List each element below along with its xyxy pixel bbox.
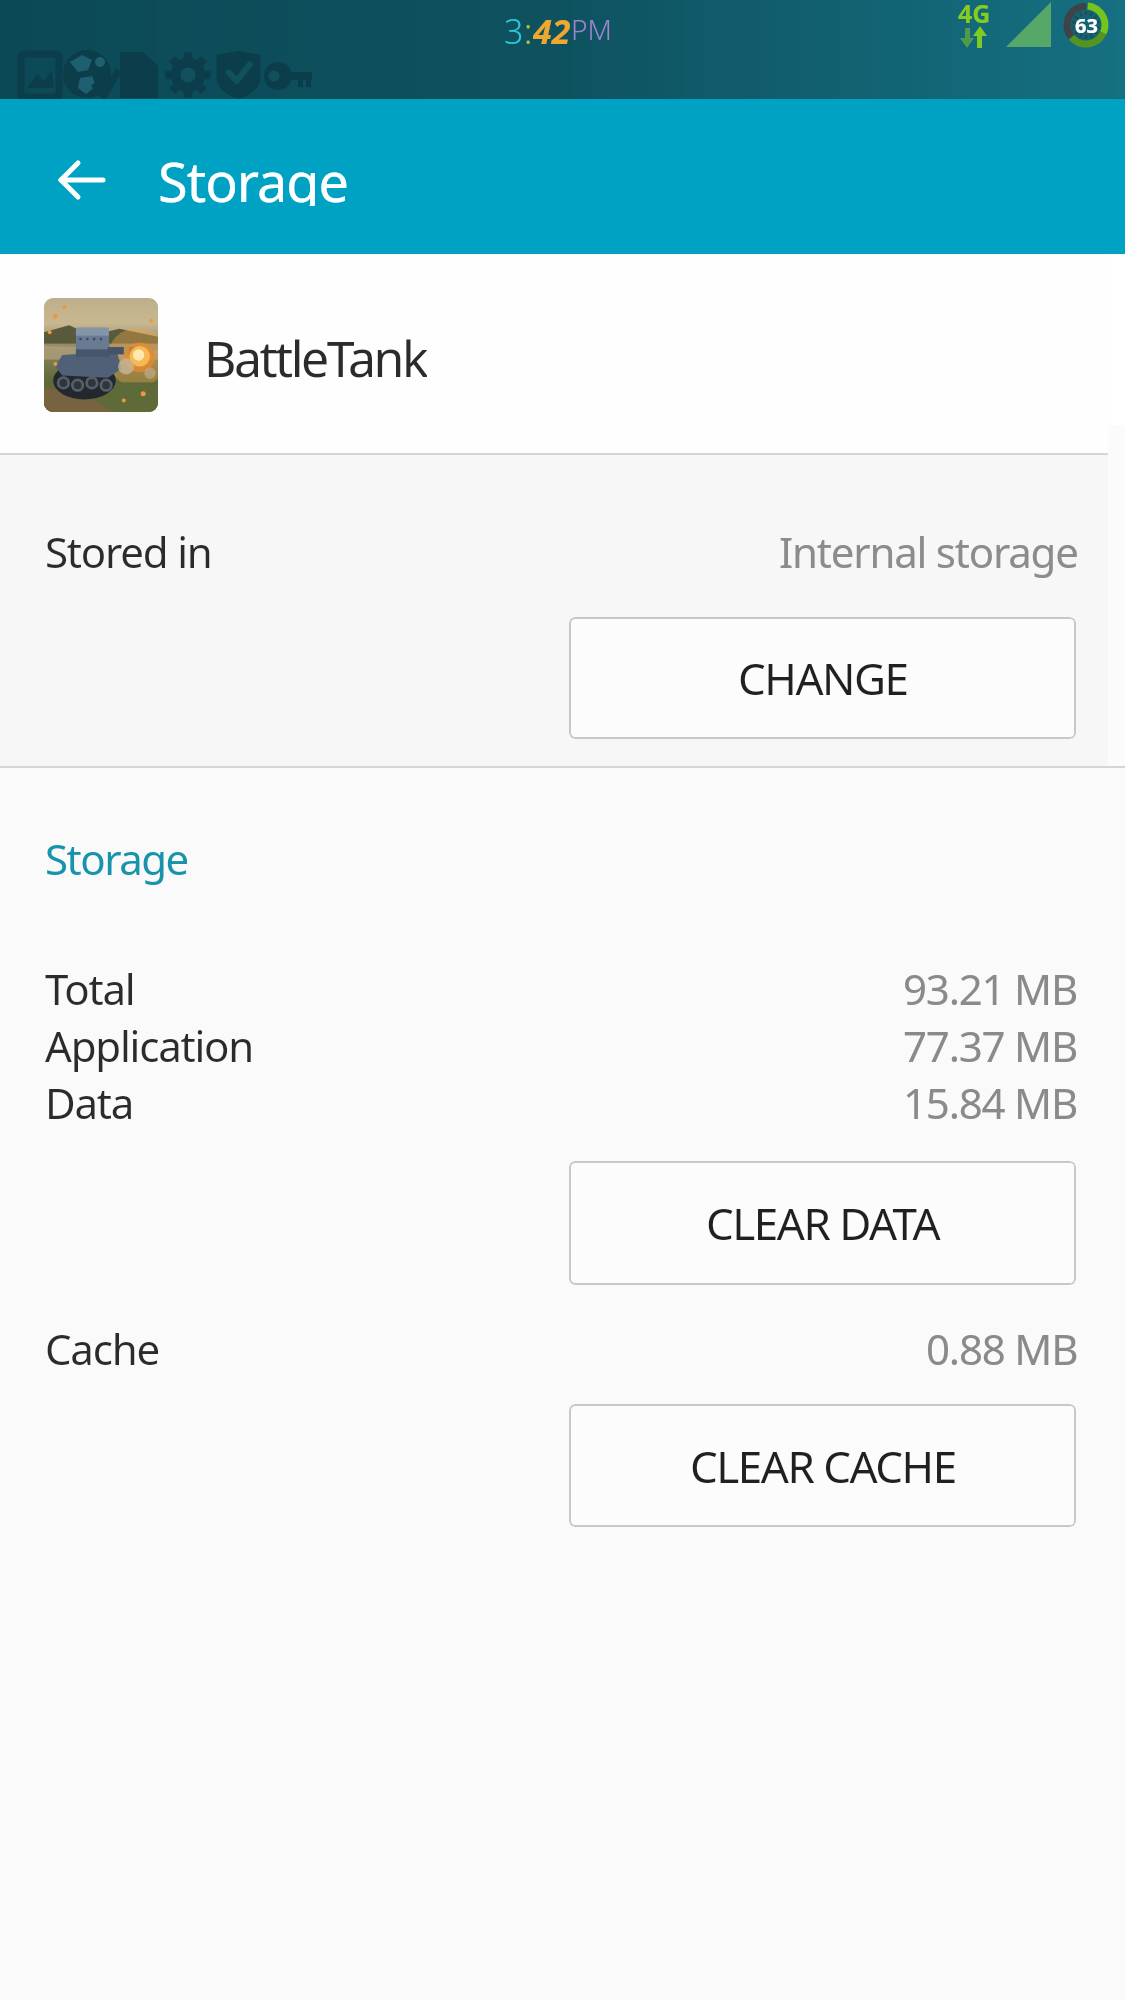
staticText: BattleTank (204, 324, 427, 386)
staticText: : (524, 8, 533, 48)
button[interactable]: CLEAR CACHE (569, 1404, 1076, 1527)
button[interactable] (38, 141, 124, 219)
button[interactable]: CLEAR DATA (569, 1161, 1076, 1285)
button[interactable]: CHANGE (569, 617, 1076, 739)
button[interactable]: Stored in (45, 521, 1078, 581)
staticText: Stored in (45, 523, 212, 580)
staticText: Storage (158, 144, 348, 206)
staticText: 63 (1075, 12, 1098, 39)
staticText: Application (45, 1017, 254, 1074)
staticText: 77.37 MB (903, 1017, 1078, 1074)
staticText: 93.21 MB (903, 960, 1078, 1017)
staticText: Storage (45, 830, 188, 887)
staticText: 42 (533, 8, 571, 48)
staticText: Total (45, 960, 135, 1017)
staticText: CLEAR DATA (706, 1193, 940, 1253)
staticText: Internal storage (779, 523, 1078, 580)
staticText: CLEAR CACHE (690, 1436, 956, 1496)
staticText: Data (45, 1074, 134, 1131)
staticText: 15.84 MB (903, 1074, 1078, 1131)
staticText: 4G (958, 0, 991, 30)
staticText: PM (571, 10, 612, 48)
staticText: 0.88 MB (926, 1320, 1078, 1377)
staticText: Cache (45, 1320, 159, 1377)
staticText: 3 (504, 8, 524, 48)
staticText: CHANGE (738, 648, 908, 708)
